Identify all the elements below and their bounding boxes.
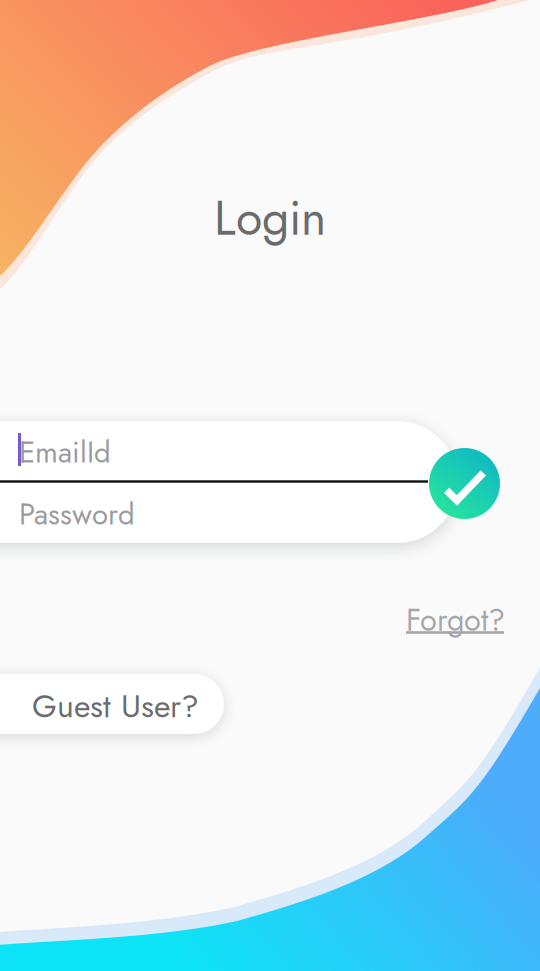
button[interactable]: Guest User? — [0, 0, 540, 971]
button[interactable]: Forgot? — [0, 0, 540, 971]
staticText: Password — [19, 493, 135, 535]
button[interactable]: Sign in — [0, 0, 540, 971]
staticText: Forgot? — [406, 598, 505, 642]
staticText: EmailId — [19, 431, 111, 473]
staticText: Guest User? — [32, 683, 199, 729]
staticText: Login — [214, 183, 326, 253]
